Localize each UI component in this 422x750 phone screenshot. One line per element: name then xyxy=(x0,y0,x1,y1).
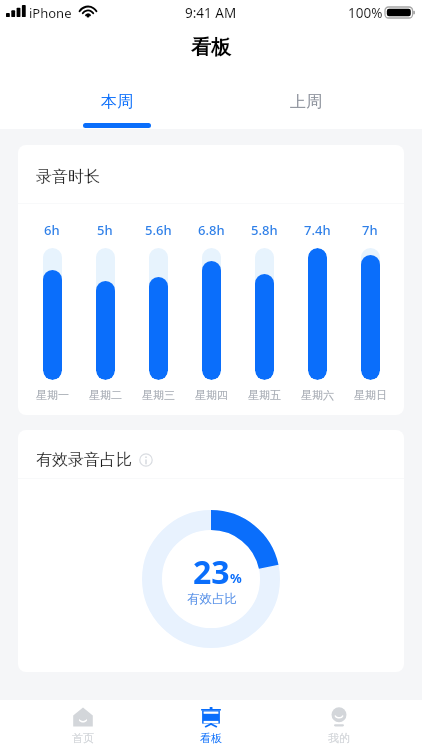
staticText: 星期日 xyxy=(354,388,387,402)
button[interactable]: 上周 xyxy=(246,64,366,112)
staticText: iPhone xyxy=(29,4,72,22)
staticText: 我的 xyxy=(328,731,350,745)
other: 首页 xyxy=(73,707,93,727)
staticText: 首页 xyxy=(72,731,94,745)
staticText: 本周 xyxy=(101,92,133,112)
staticText: 6.8h xyxy=(198,221,225,239)
staticText: 看板 xyxy=(200,731,222,745)
staticText: 6h xyxy=(44,221,60,239)
staticText: 上周 xyxy=(290,92,322,112)
button[interactable]: 我的 xyxy=(275,705,403,745)
staticText: 5.8h xyxy=(251,221,278,239)
staticText: 星期五 xyxy=(248,388,281,402)
staticText: 5h xyxy=(97,221,113,239)
staticText: 9:41 AM xyxy=(185,4,237,22)
staticText: 星期二 xyxy=(89,388,122,402)
staticText: 星期三 xyxy=(142,388,175,402)
button[interactable]: 首页 xyxy=(19,705,147,745)
other: 看板 xyxy=(201,707,221,727)
staticText: 100% xyxy=(348,4,383,22)
staticText: % xyxy=(230,569,242,587)
staticText: 7h xyxy=(362,221,378,239)
other: 我的 xyxy=(329,707,349,727)
staticText: 星期一 xyxy=(36,388,69,402)
button[interactable]: 本周 xyxy=(57,64,177,128)
staticText: 有效占比 xyxy=(187,591,237,607)
staticText: 星期六 xyxy=(301,388,334,402)
staticText: 录音时长 xyxy=(36,167,100,187)
button[interactable]: 说明 xyxy=(139,453,153,467)
staticText: 23 xyxy=(193,550,230,594)
staticText: 有效录音占比 xyxy=(36,450,132,470)
button[interactable]: 看板 xyxy=(147,705,275,745)
staticText: 看板 xyxy=(191,35,231,60)
staticText: 星期四 xyxy=(195,388,228,402)
staticText: 7.4h xyxy=(304,221,331,239)
staticText: 5.6h xyxy=(145,221,172,239)
